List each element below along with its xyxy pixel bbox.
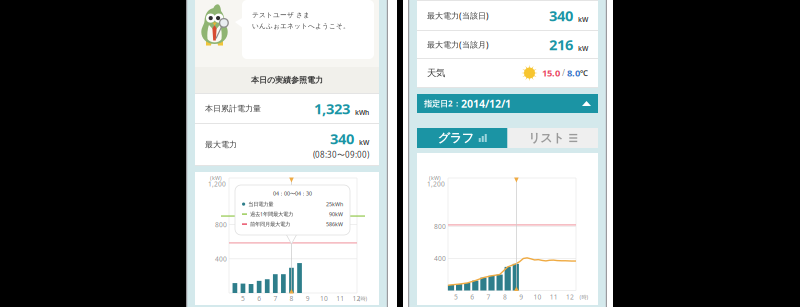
- staticText: 400: [434, 254, 446, 263]
- staticText: いんふぉエネットへようこそ。: [252, 22, 350, 30]
- button[interactable]: 最大電力: [195, 124, 379, 165]
- staticText: 天気: [427, 67, 445, 79]
- staticText: 過去1年間最大電力: [250, 211, 293, 218]
- staticText: リスト: [528, 131, 564, 145]
- staticText: 6: [257, 294, 261, 303]
- button[interactable]: グラフ: [417, 128, 507, 148]
- staticText: 11: [550, 293, 558, 301]
- staticText: 1,200: [208, 180, 226, 188]
- staticText: 800: [215, 220, 227, 229]
- button[interactable]: 最大電力(当該日): [417, 1, 598, 30]
- staticText: /: [560, 68, 567, 78]
- staticText: kW: [578, 44, 588, 53]
- staticText: 11: [336, 294, 344, 303]
- staticText: (08:30〜09:00): [313, 149, 369, 160]
- staticText: 8: [503, 293, 507, 301]
- staticText: 最大電力(当該月): [427, 39, 489, 50]
- staticText: 1,200: [427, 180, 445, 188]
- staticText: 25kWh: [326, 201, 343, 208]
- staticText: 12: [566, 293, 574, 301]
- staticText: 9: [306, 294, 310, 303]
- staticText: kW: [578, 15, 588, 24]
- staticText: 400: [215, 254, 227, 263]
- staticText: (時): [579, 293, 588, 301]
- staticText: 04：00〜04：30: [273, 190, 312, 197]
- staticText: 586kW: [326, 221, 343, 228]
- staticText: 8: [290, 294, 294, 303]
- button[interactable]: 最大電力(当該月): [417, 31, 598, 58]
- staticText: 90kW: [329, 211, 343, 218]
- staticText: 8.0: [567, 67, 580, 79]
- button[interactable]: 天気: [417, 59, 598, 87]
- staticText: 340: [549, 6, 573, 25]
- staticText: グラフ: [438, 131, 474, 145]
- staticText: 2014/12/1: [461, 96, 511, 111]
- staticText: 前年同月最大電力: [250, 221, 290, 227]
- staticText: 10: [533, 293, 541, 301]
- staticText: (時): [358, 295, 367, 302]
- staticText: 本日累計電力量: [205, 104, 261, 113]
- staticText: (kW): [429, 174, 441, 182]
- staticText: 6: [470, 293, 474, 301]
- staticText: 1,323: [314, 99, 350, 118]
- staticText: (kW): [210, 174, 222, 182]
- staticText: 340: [330, 129, 354, 148]
- button[interactable]: 本日累計電力量: [195, 94, 379, 123]
- button[interactable]: リスト: [507, 128, 598, 148]
- staticText: 15.0: [542, 67, 560, 79]
- staticText: 7: [487, 293, 491, 301]
- staticText: 当日電力量: [248, 201, 273, 207]
- staticText: kWh: [355, 108, 369, 117]
- staticText: テストユーザ さま: [252, 11, 310, 19]
- staticText: 最大電力(当該日): [427, 10, 489, 21]
- staticText: 10: [320, 294, 328, 303]
- staticText: 本日の実績参照電力: [251, 75, 323, 85]
- staticText: 5: [241, 294, 245, 303]
- staticText: 12: [352, 294, 360, 303]
- staticText: 7: [273, 294, 277, 303]
- staticText: 指定日2：: [424, 98, 461, 109]
- staticText: 5: [454, 293, 458, 301]
- staticText: 800: [434, 222, 446, 231]
- staticText: kW: [359, 138, 369, 147]
- staticText: 9: [519, 293, 523, 301]
- staticText: 最大電力: [205, 140, 237, 149]
- button[interactable]: 指定日2：: [417, 94, 598, 113]
- staticText: 216: [549, 35, 573, 54]
- staticText: ℃: [580, 68, 588, 78]
